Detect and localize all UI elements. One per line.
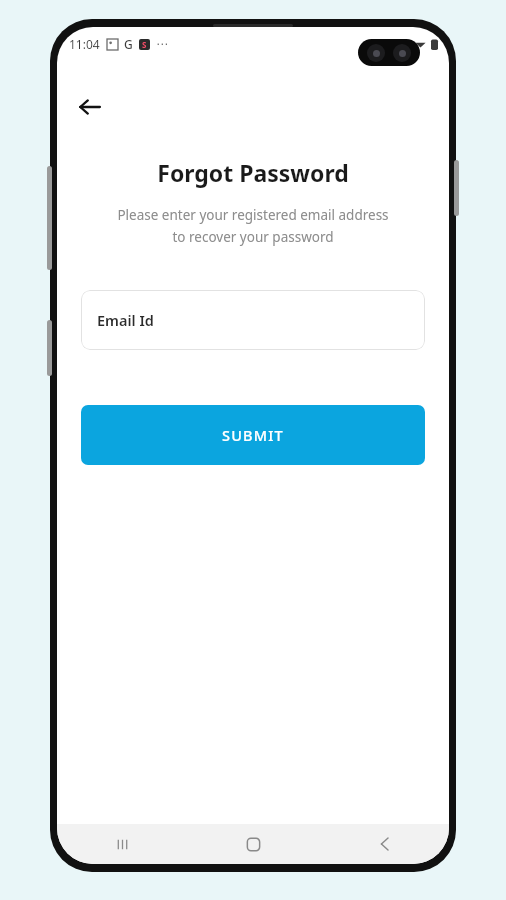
staticText: S bbox=[142, 39, 147, 50]
button[interactable]: Recents bbox=[100, 824, 144, 864]
button[interactable]: Email Id bbox=[81, 290, 425, 350]
staticText: Please enter your registered email addre… bbox=[73, 206, 433, 246]
staticText: 11:04 bbox=[69, 36, 100, 52]
button[interactable]: SUBMIT bbox=[81, 405, 425, 465]
button[interactable]: Home bbox=[231, 824, 275, 864]
button[interactable]: Back bbox=[67, 84, 113, 130]
staticText: Forgot Password bbox=[57, 157, 449, 188]
staticText: SUBMIT bbox=[222, 425, 284, 445]
staticText: ⋯ bbox=[156, 37, 168, 51]
button[interactable]: Back bbox=[362, 824, 406, 864]
staticText: G bbox=[124, 36, 133, 52]
staticText: Email Id bbox=[97, 310, 154, 330]
